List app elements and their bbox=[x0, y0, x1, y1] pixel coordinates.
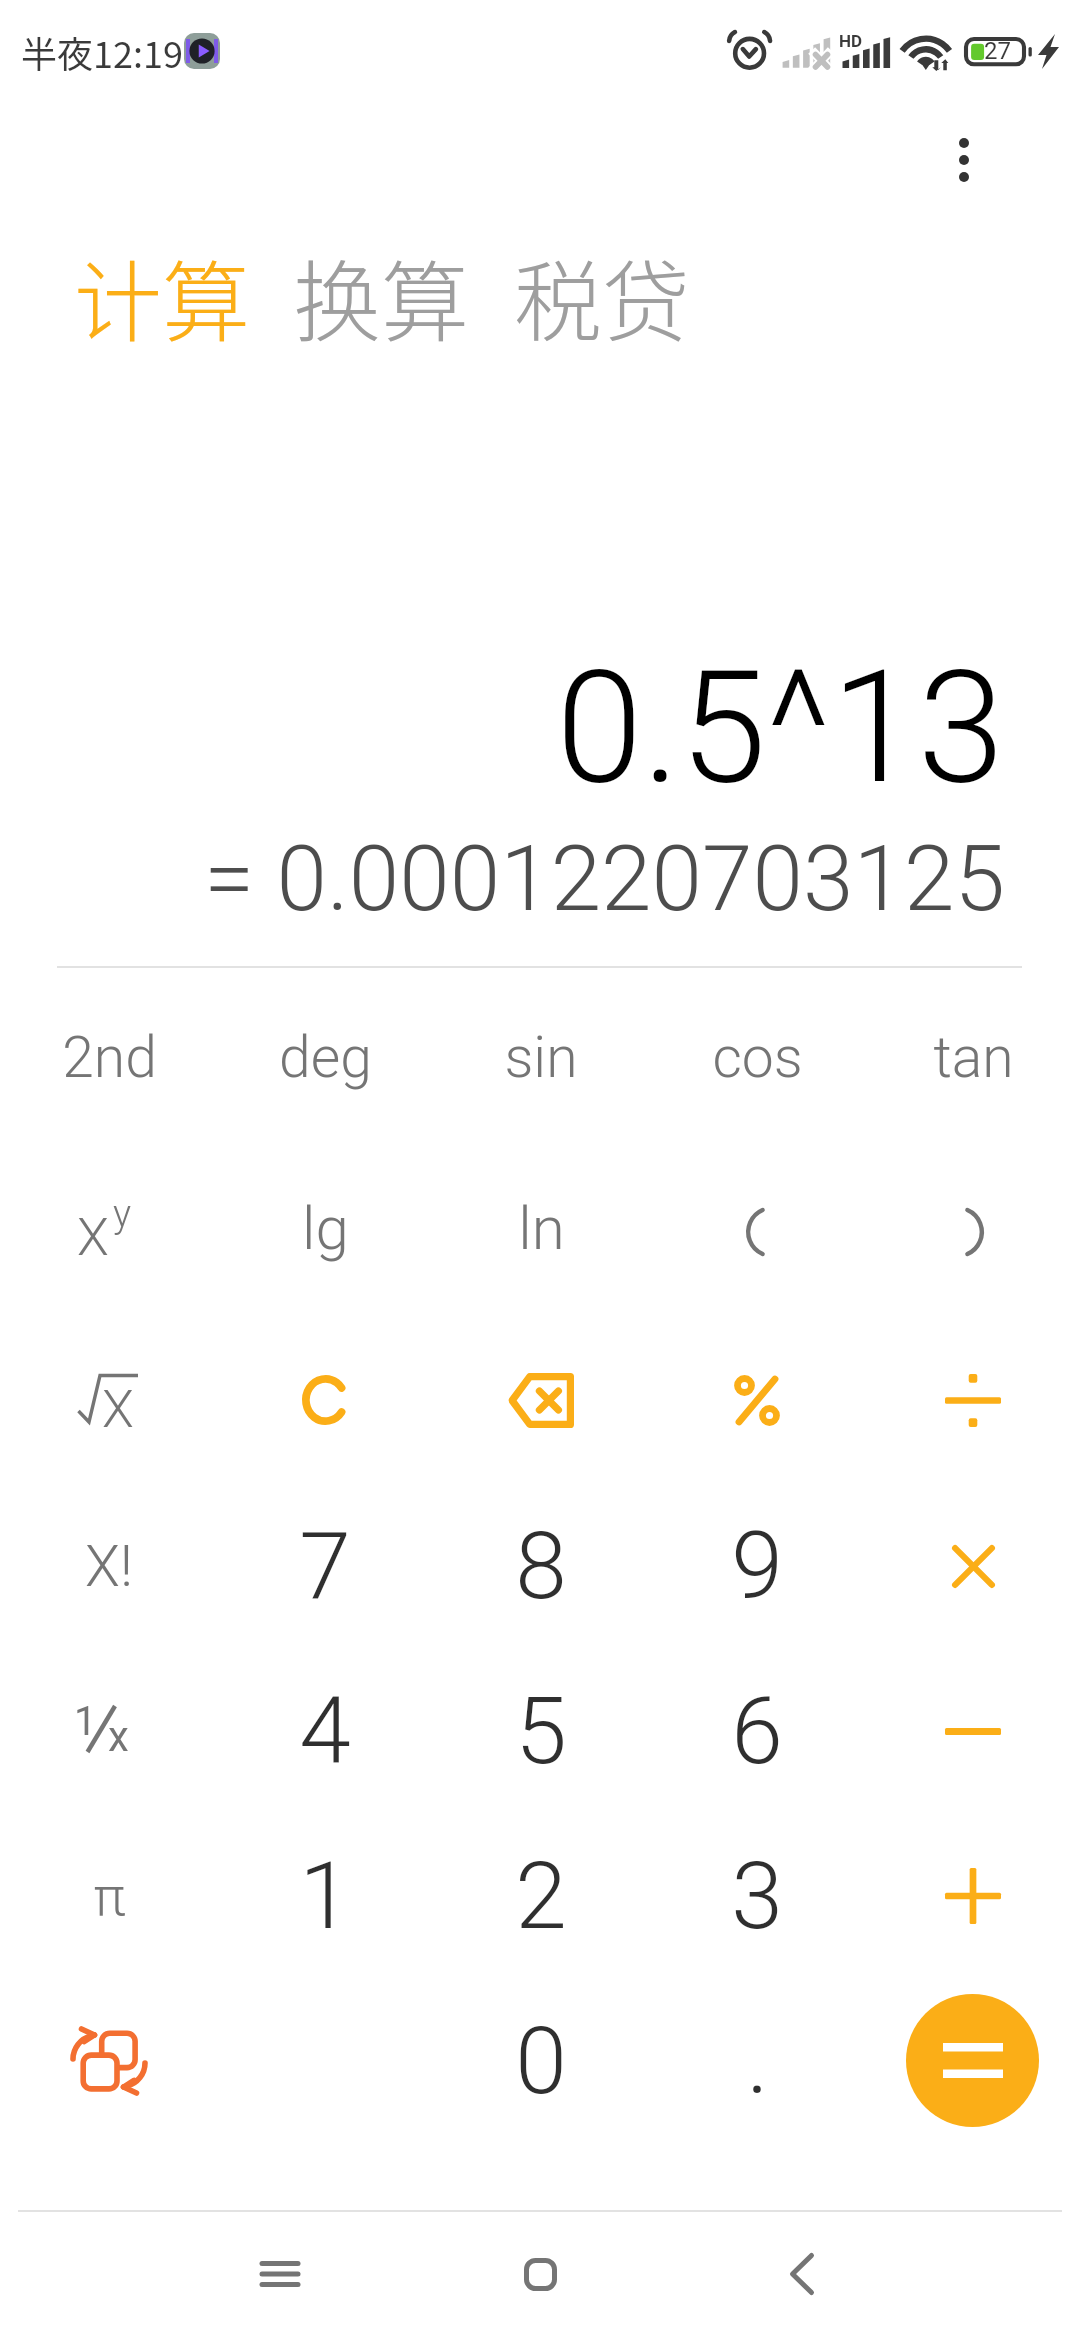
staticText: y bbox=[113, 1192, 132, 1237]
staticText: 换算 bbox=[293, 232, 470, 359]
button[interactable]: Unit conversion bbox=[1, 1981, 217, 2141]
staticText: X! bbox=[85, 1533, 133, 1600]
button[interactable]: X bbox=[1, 1145, 217, 1305]
staticText: 9 bbox=[731, 1512, 783, 1621]
button[interactable]: 5 bbox=[433, 1651, 649, 1811]
button[interactable]: Divide bbox=[865, 1320, 1080, 1480]
staticText: lg bbox=[302, 1193, 349, 1263]
button[interactable]: Recent apps bbox=[220, 2214, 340, 2334]
staticText: 6 bbox=[731, 1677, 783, 1786]
staticText: 0.5^13 bbox=[556, 636, 1005, 819]
staticText: X bbox=[77, 1207, 109, 1257]
button[interactable]: 7 bbox=[217, 1486, 433, 1646]
button[interactable]: π bbox=[1, 1816, 217, 1976]
staticText: 1 bbox=[299, 1842, 351, 1951]
button[interactable]: Clear bbox=[217, 1320, 433, 1480]
staticText: π bbox=[93, 1865, 126, 1928]
button[interactable]: 2 bbox=[433, 1816, 649, 1976]
staticText: 5 bbox=[515, 1677, 567, 1786]
button[interactable]: X! bbox=[1, 1486, 217, 1646]
staticText: 2nd bbox=[62, 1024, 157, 1091]
button[interactable]: Open bracket bbox=[649, 1145, 865, 1305]
button[interactable]: Home bbox=[480, 2214, 600, 2334]
staticText: = 0.0001220703125 bbox=[204, 826, 1005, 933]
staticText: 计算 bbox=[74, 232, 251, 359]
staticText: ln bbox=[518, 1193, 565, 1263]
button[interactable]: 税贷 bbox=[514, 232, 691, 359]
button[interactable]: tan bbox=[865, 974, 1080, 1134]
button[interactable]: deg bbox=[217, 974, 433, 1134]
button[interactable]: Back bbox=[742, 2214, 862, 2334]
button[interactable]: Equals bbox=[906, 1994, 1039, 2127]
button[interactable]: 1 bbox=[1, 1651, 217, 1811]
button[interactable]: Square root bbox=[1, 1320, 217, 1480]
button[interactable]: 3 bbox=[649, 1816, 865, 1976]
button[interactable]: sin bbox=[433, 974, 649, 1134]
button[interactable]: 换算 bbox=[293, 232, 470, 359]
staticText: . bbox=[746, 2007, 769, 2116]
button[interactable]: ln bbox=[433, 1145, 649, 1305]
button[interactable]: 4 bbox=[217, 1651, 433, 1811]
staticText: 27 bbox=[984, 37, 1011, 65]
button[interactable]: Backspace bbox=[433, 1320, 649, 1480]
button[interactable]: Percent bbox=[649, 1320, 865, 1480]
button[interactable]: Minus bbox=[865, 1651, 1080, 1811]
staticText: 3 bbox=[731, 1842, 783, 1951]
staticText: sin bbox=[504, 1024, 578, 1091]
button[interactable]: 8 bbox=[433, 1486, 649, 1646]
button[interactable]: Close bracket bbox=[865, 1145, 1080, 1305]
staticText: 2 bbox=[515, 1842, 567, 1951]
button[interactable]: 1 bbox=[217, 1816, 433, 1976]
button[interactable]: 6 bbox=[649, 1651, 865, 1811]
staticText: 0 bbox=[515, 2007, 567, 2116]
staticText: 税贷 bbox=[514, 232, 691, 359]
staticText: 4 bbox=[299, 1677, 351, 1786]
button[interactable]: 0 bbox=[433, 1981, 649, 2141]
staticText: 1 bbox=[74, 1698, 97, 1745]
button[interactable]: 2nd bbox=[1, 974, 217, 1134]
button[interactable]: 9 bbox=[649, 1486, 865, 1646]
staticText: HD bbox=[839, 31, 863, 51]
button[interactable]: Multiply bbox=[865, 1486, 1080, 1646]
staticText: tan bbox=[933, 1024, 1014, 1091]
button[interactable]: cos bbox=[649, 974, 865, 1134]
staticText: cos bbox=[712, 1024, 803, 1091]
button[interactable]: lg bbox=[217, 1145, 433, 1305]
staticText: x bbox=[108, 1712, 129, 1761]
staticText: 7 bbox=[299, 1512, 351, 1621]
button[interactable]: Plus bbox=[865, 1816, 1080, 1976]
staticText: 半夜12:19 bbox=[21, 26, 183, 78]
staticText: 8 bbox=[515, 1512, 567, 1621]
staticText: deg bbox=[279, 1024, 372, 1091]
button[interactable]: More options bbox=[908, 104, 1020, 216]
staticText: X bbox=[102, 1379, 134, 1429]
button[interactable]: 计算 bbox=[74, 232, 251, 359]
button[interactable]: . bbox=[649, 1981, 865, 2141]
